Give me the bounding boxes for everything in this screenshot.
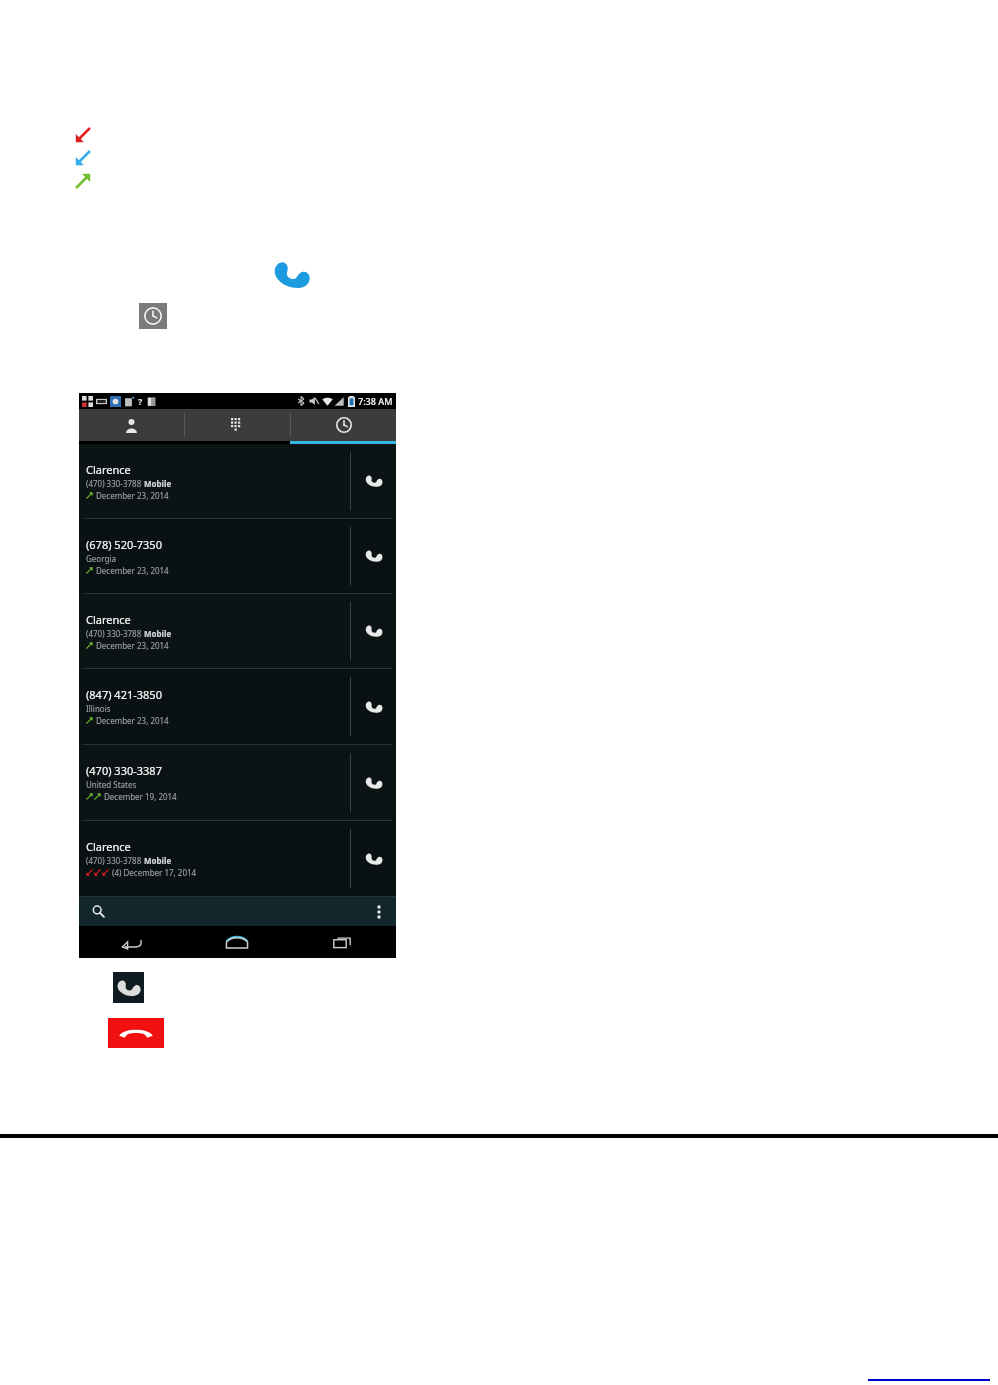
button[interactable]: Home bbox=[184, 926, 290, 958]
button[interactable]: (847) 421-3850 bbox=[79, 669, 396, 744]
button[interactable]: Contacts bbox=[79, 409, 184, 441]
staticText: Illinois bbox=[86, 703, 111, 714]
other: Dialpad bbox=[231, 418, 244, 433]
other: Contacts bbox=[124, 418, 139, 433]
other: Search bbox=[92, 905, 105, 918]
button[interactable]: Call bbox=[351, 821, 396, 896]
other: Call bbox=[366, 699, 382, 715]
staticText: (4) December 17, 2014 bbox=[112, 867, 197, 878]
staticText: Mobile bbox=[144, 855, 172, 866]
staticText: December 23, 2014 bbox=[96, 565, 169, 576]
staticText: 7:38 AM bbox=[358, 395, 393, 407]
other: Home bbox=[225, 935, 249, 949]
staticText: December 19, 2014 bbox=[104, 791, 177, 802]
other: Back bbox=[122, 936, 142, 949]
button[interactable]: Call bbox=[351, 444, 396, 518]
button[interactable]: Clarence bbox=[79, 821, 396, 896]
staticText: Clarence bbox=[86, 462, 131, 477]
staticText: (470) 330-3387 bbox=[86, 763, 162, 778]
staticText: December 23, 2014 bbox=[96, 715, 169, 726]
button[interactable]: Clarence bbox=[79, 444, 396, 518]
staticText: December 23, 2014 bbox=[96, 490, 169, 501]
other: Call bbox=[366, 473, 382, 489]
button[interactable]: Call bbox=[351, 669, 396, 744]
staticText: (470) 330-3788 bbox=[86, 628, 144, 639]
staticText: Georgia bbox=[86, 553, 116, 564]
staticText: December 23, 2014 bbox=[96, 640, 169, 651]
button[interactable]: Recent apps bbox=[290, 926, 396, 958]
button[interactable]: Call bbox=[351, 594, 396, 668]
button[interactable]: Call bbox=[351, 745, 396, 820]
other: More options bbox=[377, 905, 381, 919]
button[interactable]: Call history bbox=[291, 409, 396, 441]
button[interactable]: Call bbox=[351, 519, 396, 593]
button[interactable]: Clarence bbox=[79, 594, 396, 668]
staticText: Clarence bbox=[86, 612, 131, 627]
staticText: (470) 330-3788 bbox=[86, 478, 144, 489]
button[interactable]: Dialpad bbox=[185, 409, 290, 441]
staticText: ? bbox=[138, 395, 143, 407]
staticText: Clarence bbox=[86, 839, 131, 854]
button[interactable]: (678) 520-7350 bbox=[79, 519, 396, 593]
other: Recent apps bbox=[333, 935, 353, 949]
button[interactable]: Back bbox=[79, 926, 184, 958]
staticText: (470) 330-3788 bbox=[86, 855, 144, 866]
other: Call bbox=[366, 851, 382, 867]
other: Call bbox=[366, 775, 382, 791]
button[interactable]: (470) 330-3387 bbox=[79, 745, 396, 820]
staticText: Mobile bbox=[144, 478, 172, 489]
staticText: United States bbox=[86, 779, 137, 790]
staticText: (847) 421-3850 bbox=[86, 687, 162, 702]
other: Call bbox=[366, 548, 382, 564]
other: Call history bbox=[336, 417, 352, 433]
staticText: (678) 520-7350 bbox=[86, 537, 162, 552]
other: Call bbox=[366, 623, 382, 639]
staticText: Mobile bbox=[144, 628, 172, 639]
button[interactable]: Search bbox=[79, 897, 117, 926]
button[interactable]: More options bbox=[362, 897, 396, 926]
